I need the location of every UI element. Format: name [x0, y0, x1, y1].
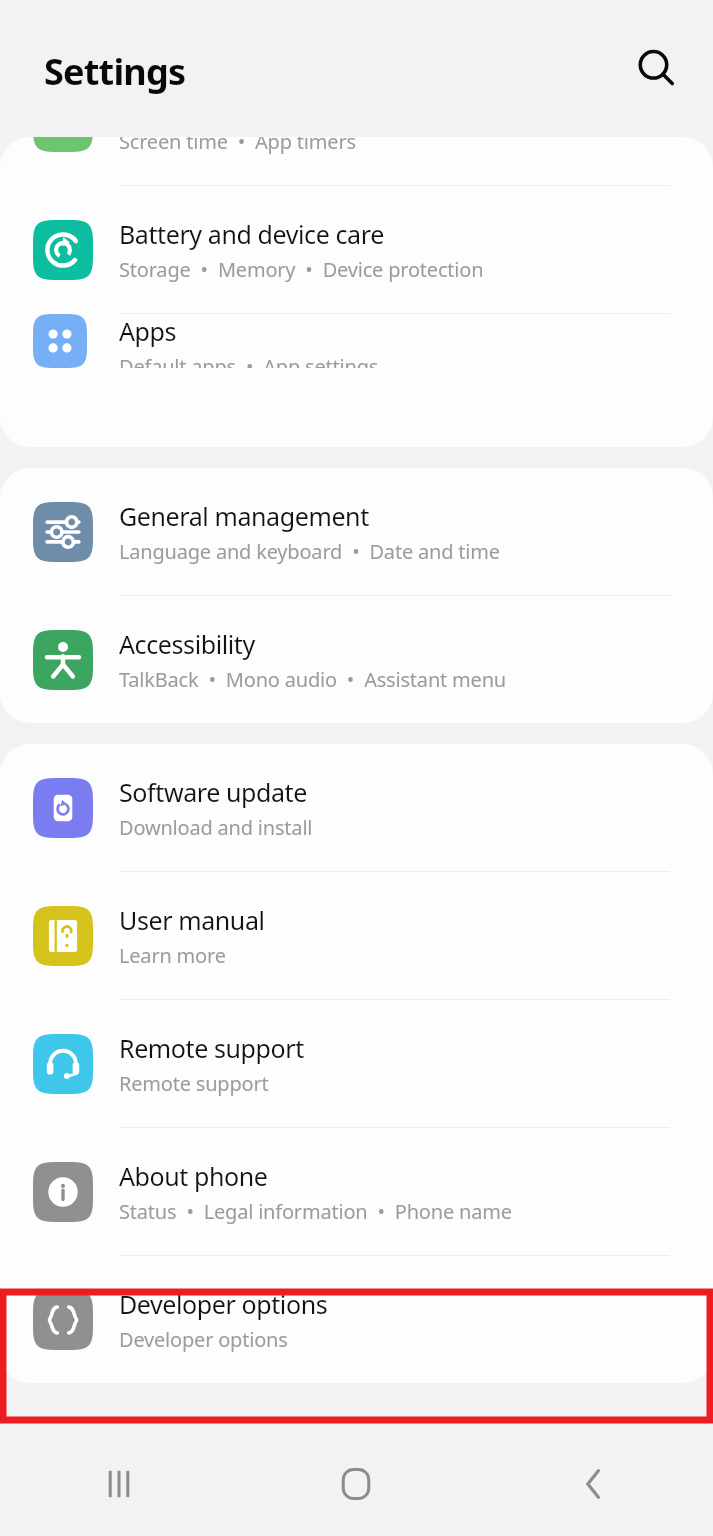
- staticText: About phone: [119, 1159, 268, 1193]
- staticText: Default apps • App settings: [119, 353, 379, 368]
- button[interactable]: Apps: [0, 314, 713, 368]
- button[interactable]: Battery and device care: [0, 186, 713, 313]
- button[interactable]: Developer options: [0, 1256, 713, 1383]
- button[interactable]: Accessibility: [0, 596, 713, 723]
- staticText: Screen time • App timers: [119, 137, 356, 155]
- staticText: Apps: [119, 314, 177, 348]
- staticText: Status • Legal information • Phone name: [119, 1198, 512, 1225]
- staticText: Software update: [119, 775, 307, 809]
- button[interactable]: Recents: [0, 1432, 237, 1536]
- staticText: General management: [119, 499, 369, 533]
- staticText: TalkBack • Mono audio • Assistant menu: [119, 666, 506, 693]
- staticText: Remote support: [119, 1070, 269, 1097]
- button[interactable]: About phone: [0, 1128, 713, 1255]
- button[interactable]: User manual: [0, 872, 713, 999]
- button[interactable]: Digital Wellbeing: [0, 137, 713, 185]
- staticText: Storage • Memory • Device protection: [119, 256, 484, 283]
- button[interactable]: General management: [0, 468, 713, 595]
- staticText: Developer options: [119, 1287, 328, 1321]
- staticText: Settings: [44, 47, 186, 96]
- button[interactable]: Home: [237, 1432, 475, 1536]
- button[interactable]: Software update: [0, 744, 713, 871]
- staticText: Download and install: [119, 814, 313, 841]
- staticText: Accessibility: [119, 627, 255, 661]
- staticText: Language and keyboard • Date and time: [119, 538, 500, 565]
- staticText: Learn more: [119, 942, 226, 969]
- button[interactable]: Back: [475, 1432, 713, 1536]
- staticText: User manual: [119, 903, 265, 937]
- staticText: Battery and device care: [119, 217, 384, 251]
- button[interactable]: Remote support: [0, 1000, 713, 1127]
- staticText: Remote support: [119, 1031, 304, 1065]
- button[interactable]: Search: [625, 38, 687, 100]
- staticText: Developer options: [119, 1326, 288, 1353]
